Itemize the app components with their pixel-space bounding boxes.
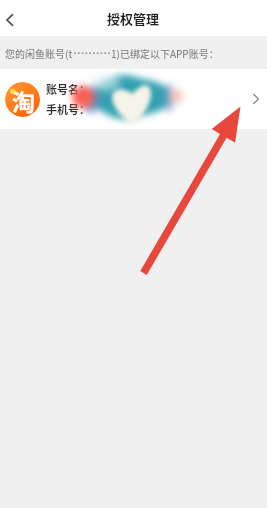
- staticText: 淘: [12, 84, 35, 117]
- button[interactable]: Open account detail: [243, 86, 267, 112]
- staticText: 账号名：: [46, 81, 90, 97]
- staticText: 手机号：: [46, 101, 90, 117]
- staticText: 1)已绑定以下APP账号：: [111, 46, 219, 60]
- staticText: 您的闲鱼账号(t: [5, 46, 73, 60]
- button[interactable]: Back: [0, 7, 23, 33]
- staticText: 授权管理: [107, 9, 160, 28]
- button[interactable]: 淘: [0, 69, 267, 129]
